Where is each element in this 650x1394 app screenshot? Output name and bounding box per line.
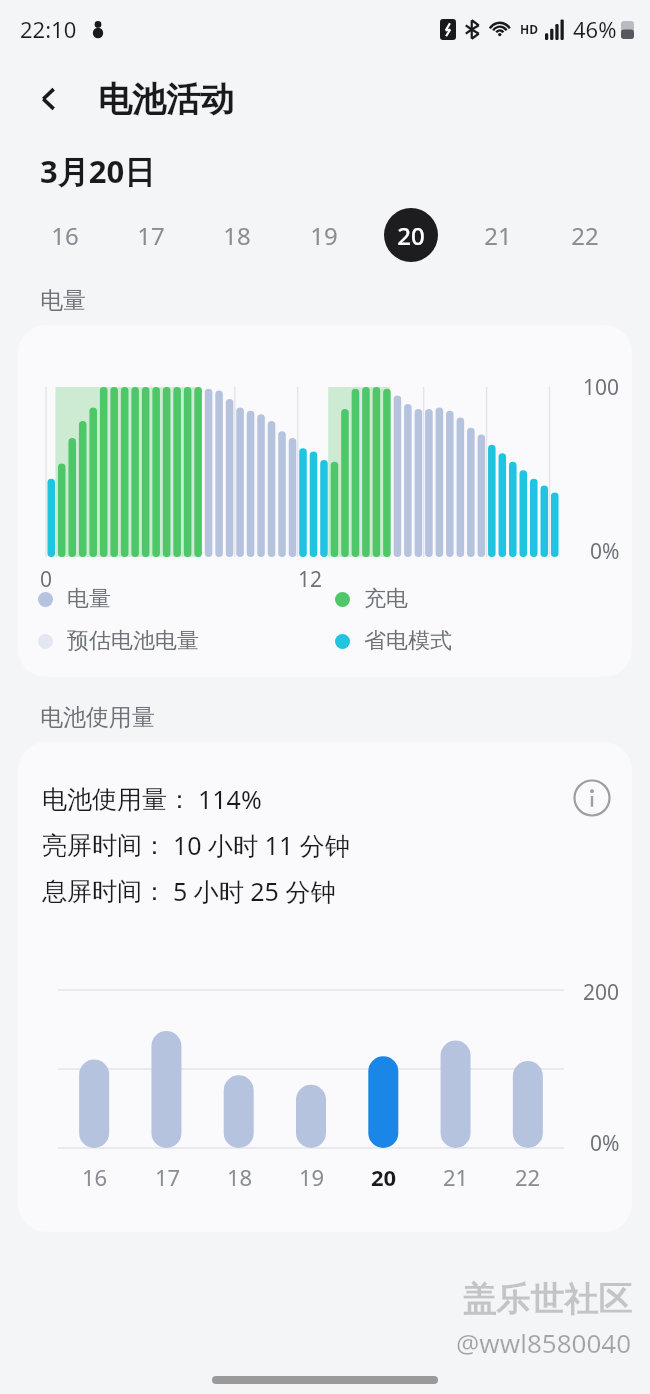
staticText: 22 [515, 1162, 541, 1192]
staticText: 114% [198, 782, 262, 816]
button[interactable]: 20 [367, 202, 454, 268]
staticText: 17 [137, 219, 165, 252]
staticText: 盖乐世社区 [462, 1278, 632, 1321]
staticText: 16 [82, 1162, 108, 1192]
staticText: 19 [310, 219, 338, 252]
staticText: 18 [223, 219, 251, 252]
staticText: 省电模式 [364, 627, 452, 655]
staticText: 10 小时 11 分钟 [173, 828, 350, 862]
staticText: 充电 [364, 585, 408, 613]
staticText: 20 [397, 219, 425, 252]
staticText: 19 [299, 1162, 325, 1192]
staticText: 0 [40, 565, 53, 594]
button[interactable]: 18 [194, 202, 280, 268]
staticText: 0% [590, 537, 620, 566]
staticText: 22:10 [20, 14, 77, 44]
staticText: 3月20日 [40, 150, 156, 192]
staticText: 电池使用量： [42, 784, 192, 815]
staticText: 电池使用量 [40, 703, 155, 732]
staticText: 息屏时间： [42, 876, 167, 907]
staticText: @wwl8580040 [456, 1325, 632, 1360]
staticText: 电池活动 [98, 78, 234, 121]
staticText: 0% [590, 1129, 620, 1158]
staticText: 20 [371, 1162, 397, 1192]
staticText: 18 [227, 1162, 253, 1192]
button[interactable]: 22 [541, 202, 628, 268]
button[interactable]: 17 [108, 202, 194, 268]
staticText: 21 [484, 219, 512, 252]
staticText: 预估电池电量 [67, 627, 199, 655]
staticText: 46% [573, 14, 617, 44]
button[interactable]: 21 [454, 202, 541, 268]
staticText: 5 小时 25 分钟 [173, 874, 336, 908]
button[interactable]: 16 [22, 202, 108, 268]
staticText: 电量 [67, 585, 111, 613]
staticText: 17 [155, 1162, 181, 1192]
button[interactable]: Info [566, 772, 618, 824]
button[interactable]: 19 [280, 202, 367, 268]
button[interactable]: 100 [18, 325, 632, 677]
button[interactable]: Back [26, 76, 72, 122]
staticText: 12 [298, 565, 323, 594]
staticText: HD [520, 21, 538, 37]
staticText: 22 [571, 219, 599, 252]
staticText: 100 [583, 373, 620, 402]
staticText: 电量 [40, 286, 86, 315]
staticText: 200 [583, 978, 620, 1007]
staticText: 亮屏时间： [42, 830, 167, 861]
staticText: 21 [443, 1162, 469, 1192]
staticText: 16 [51, 219, 79, 252]
